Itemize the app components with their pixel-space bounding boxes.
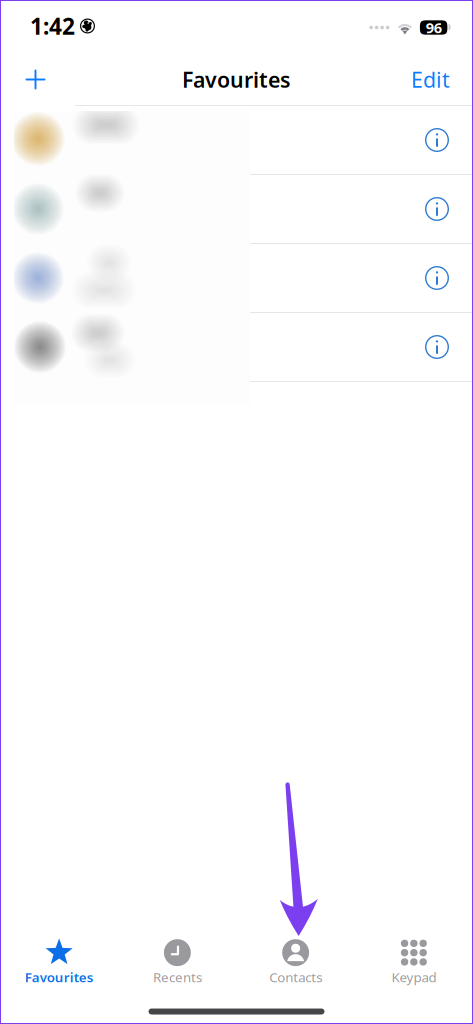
- staticText: 96: [426, 18, 442, 37]
- staticText: Keypad: [391, 968, 436, 986]
- button[interactable]: [0, 244, 473, 312]
- button[interactable]: [0, 175, 473, 243]
- staticText: Favourites: [25, 968, 94, 986]
- staticText: Recents: [153, 968, 202, 986]
- staticText: 1:42: [30, 11, 75, 41]
- button[interactable]: Favourites: [0, 934, 118, 990]
- staticText: Contacts: [269, 968, 322, 986]
- button[interactable]: Keypad: [355, 934, 473, 990]
- button[interactable]: [0, 313, 473, 381]
- button[interactable]: Add favourite: [12, 56, 59, 100]
- staticText: Edit: [411, 65, 450, 94]
- button[interactable]: Edit: [398, 56, 450, 100]
- button[interactable]: [0, 106, 473, 174]
- button[interactable]: Contacts: [236, 934, 355, 990]
- button[interactable]: Recents: [118, 934, 236, 990]
- staticText: Favourites: [182, 65, 291, 94]
